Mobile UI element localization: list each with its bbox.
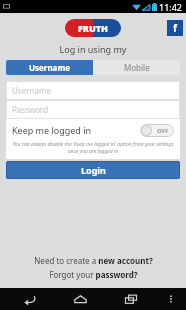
staticText: Mobile	[124, 62, 150, 73]
staticText: Need to create a new account?	[34, 255, 153, 266]
staticText: Log in using my	[0, 43, 186, 55]
staticText: f	[173, 21, 177, 35]
staticText: Username	[12, 85, 51, 96]
button[interactable]: Mobile	[93, 60, 180, 75]
button[interactable]: Facebook	[167, 20, 183, 36]
staticText: OFF	[157, 127, 169, 135]
button[interactable]: More options	[162, 290, 180, 308]
button[interactable]: Username	[6, 81, 180, 100]
button[interactable]: Password	[6, 100, 180, 119]
staticText: Login	[81, 164, 106, 176]
button[interactable]: Recent apps	[116, 288, 146, 310]
button[interactable]: FRUTH	[65, 19, 121, 37]
staticText: Keep me logged in	[12, 124, 92, 136]
staticText: FRUTH	[78, 22, 108, 34]
staticText: 11:42	[159, 1, 183, 13]
staticText: Username	[29, 62, 70, 73]
button[interactable]: Need to create a new account?	[0, 255, 186, 266]
button[interactable]: Keep me logged in toggle, off	[140, 124, 174, 137]
button[interactable]: Keep me logged in	[6, 119, 180, 141]
staticText: You can always disable the 'Keep me logg…	[10, 141, 176, 155]
button[interactable]: Login	[6, 161, 180, 179]
button[interactable]: Back	[14, 288, 44, 310]
staticText: Password	[12, 104, 49, 115]
button[interactable]: Username	[6, 60, 93, 75]
staticText: Forgot your password?	[49, 269, 138, 280]
button[interactable]: Forgot your password?	[0, 269, 186, 280]
button[interactable]: Home	[65, 288, 95, 310]
